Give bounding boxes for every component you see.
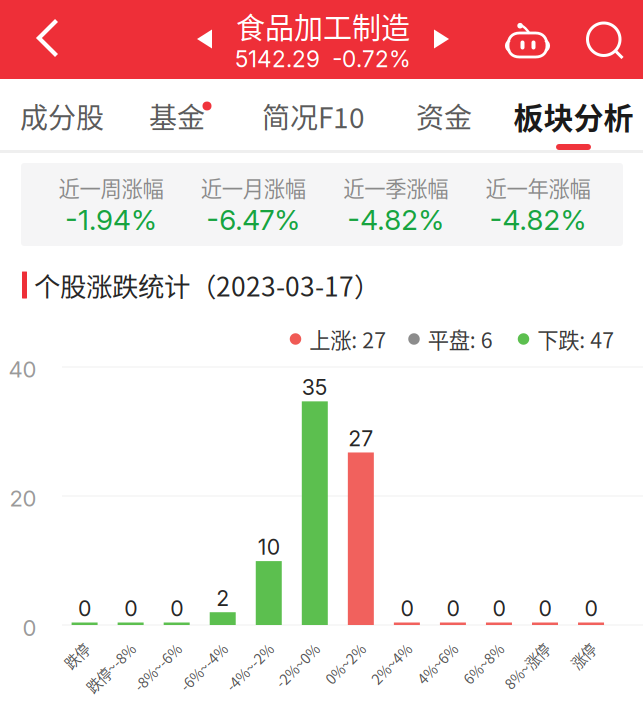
staticText: -4%~-2% (211, 636, 271, 656)
staticText: 0%~2% (313, 636, 363, 656)
staticText: -1.94% (65, 203, 157, 237)
staticText: 0 (538, 596, 551, 621)
button[interactable]: 板块分析 (507, 80, 639, 151)
staticText: 近一月涨幅 (201, 172, 306, 203)
staticText: 0 (78, 596, 91, 621)
staticText: 跌停~-8% (71, 636, 133, 656)
staticText: -8%~-6% (119, 636, 179, 656)
staticText: 5142.29 -0.72% (235, 45, 411, 73)
staticText: 0 (170, 596, 183, 621)
staticText: 食品加工制造 (236, 5, 410, 47)
staticText: 10 (258, 534, 280, 560)
staticText: 平盘: 6 (428, 324, 493, 354)
button[interactable]: 食品加工制造 (197, 4, 449, 74)
staticText: 近一周涨幅 (58, 172, 163, 203)
button[interactable]: 成分股 (0, 80, 128, 151)
staticText: 简况F10 (262, 96, 365, 136)
staticText: 个股涨跌统计（2023-03-17） (34, 266, 380, 304)
button[interactable]: 简况F10 (247, 80, 379, 151)
staticText: 8%~涨停 (490, 636, 547, 656)
staticText: 2 (216, 585, 229, 611)
staticText: 成分股 (20, 96, 104, 136)
staticText: 资金 (416, 96, 472, 136)
staticText: 6%~8% (451, 636, 501, 656)
staticText: 0 (124, 596, 137, 621)
staticText: 40 (8, 356, 36, 383)
staticText: 0 (584, 596, 597, 621)
staticText: 近一年涨幅 (485, 172, 590, 203)
staticText: 0 (446, 596, 459, 621)
button[interactable]: Back (16, 0, 80, 78)
staticText: 0 (400, 596, 413, 621)
staticText: 近一季涨幅 (343, 172, 448, 203)
staticText: 0 (22, 615, 36, 641)
staticText: 跌停 (59, 636, 87, 656)
button[interactable]: 基金 (111, 80, 243, 151)
button[interactable]: 资金 (378, 80, 510, 151)
staticText: 35 (302, 374, 328, 400)
staticText: -6.47% (206, 203, 300, 237)
staticText: 27 (348, 426, 373, 451)
staticText: 涨停 (565, 636, 593, 656)
staticText: 0 (492, 596, 505, 621)
staticText: 2%~4% (359, 636, 409, 656)
staticText: 上涨: 27 (309, 324, 386, 354)
staticText: -4.82% (489, 203, 586, 237)
staticText: 20 (9, 485, 36, 512)
button[interactable]: Search (577, 1, 633, 80)
staticText: -4.82% (347, 203, 444, 237)
button[interactable]: AI assistant (499, 0, 555, 79)
staticText: 下跌: 47 (537, 324, 614, 354)
staticText: -6%~-4% (165, 636, 225, 656)
staticText: 板块分析 (513, 94, 633, 138)
staticText: 基金 (149, 96, 205, 136)
staticText: 4%~6% (405, 636, 455, 656)
staticText: -2%~0% (262, 636, 317, 656)
